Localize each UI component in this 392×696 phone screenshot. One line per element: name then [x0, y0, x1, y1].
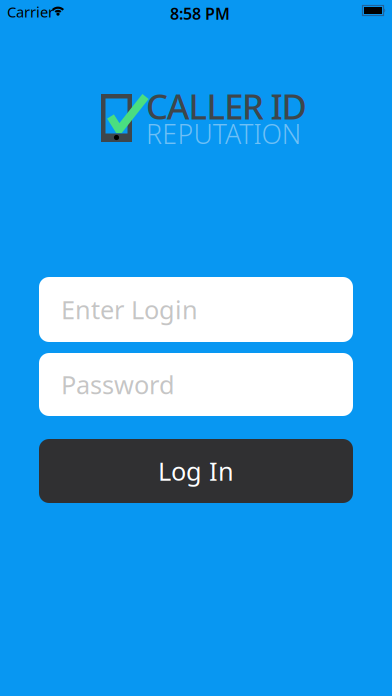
button[interactable]: Log In	[39, 439, 353, 503]
staticText: REPUTATION	[146, 116, 301, 151]
button[interactable]: Password	[39, 353, 353, 416]
staticText: Carrier	[7, 2, 54, 21]
staticText: Password	[61, 368, 175, 401]
staticText: Log In	[158, 454, 234, 488]
button[interactable]: Enter Login	[39, 277, 353, 342]
staticText: Enter Login	[61, 293, 198, 326]
staticText: CALLER ID	[146, 83, 306, 129]
staticText: 8:58 PM	[170, 3, 230, 24]
